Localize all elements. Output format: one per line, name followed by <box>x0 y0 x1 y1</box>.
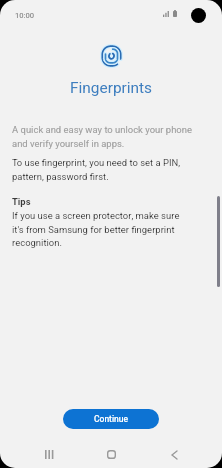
staticText: A quick and easy way to unlock your phon… <box>12 123 193 151</box>
staticText: Continue <box>94 413 129 425</box>
staticText: Fingerprints <box>70 77 153 100</box>
staticText: Tips <box>12 195 31 209</box>
staticText: If you use a screen protector, make sure… <box>12 209 193 250</box>
button[interactable]: Home <box>93 441 129 468</box>
button[interactable]: Back <box>156 441 192 468</box>
button[interactable]: Recent apps <box>31 441 67 468</box>
staticText: 10:00 <box>15 10 35 21</box>
staticText: To use fingerprint, you need to set a PI… <box>12 156 193 184</box>
button[interactable]: Continue <box>63 409 159 429</box>
